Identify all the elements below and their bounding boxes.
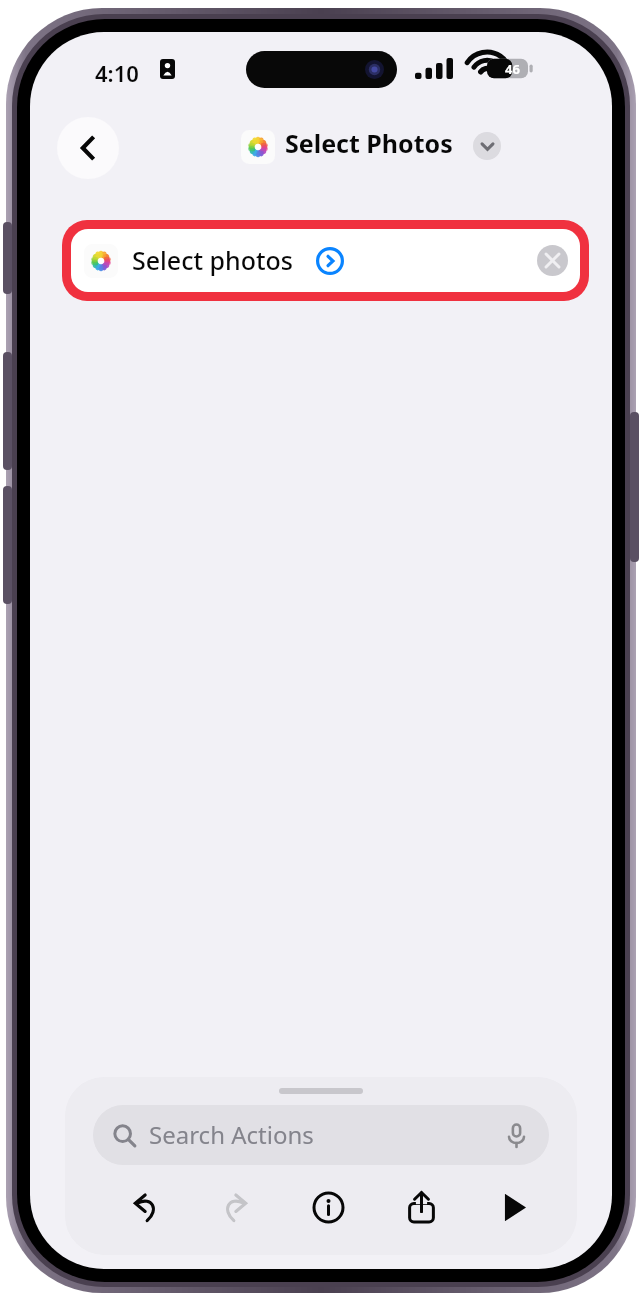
staticText: 46 — [505, 60, 520, 78]
staticText: Select photos — [132, 243, 294, 277]
button[interactable]: Select Photos — [241, 126, 409, 160]
button[interactable]: Dictate — [504, 1123, 529, 1148]
button[interactable]: Remove action — [537, 245, 568, 276]
staticText: Select Photos — [285, 126, 453, 160]
button[interactable]: Undo — [120, 1183, 168, 1231]
button[interactable]: Search Actions — [93, 1105, 549, 1165]
button[interactable]: Info — [304, 1183, 352, 1231]
button[interactable]: Back — [57, 117, 119, 179]
staticText: 4:10 — [95, 58, 139, 88]
button[interactable]: Run — [489, 1183, 537, 1231]
button[interactable]: Open selection — [316, 247, 344, 275]
button[interactable]: Select photos — [71, 229, 580, 292]
staticText: Search Actions — [149, 1118, 314, 1151]
button[interactable]: Share — [397, 1183, 445, 1231]
button[interactable]: Redo — [212, 1183, 260, 1231]
